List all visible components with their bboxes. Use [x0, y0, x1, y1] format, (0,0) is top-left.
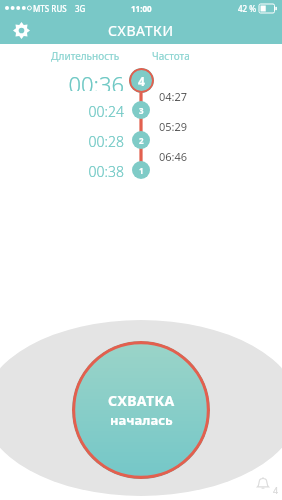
button[interactable]: 00:24	[40, 102, 124, 118]
staticText: СХВАТКИ	[108, 21, 174, 40]
button[interactable]: 00:38	[40, 162, 124, 178]
button[interactable]: СХВАТКА	[72, 341, 210, 479]
button[interactable]: 3	[132, 101, 150, 119]
staticText: 00:24	[88, 102, 124, 118]
staticText: СХВАТКА	[108, 391, 175, 410]
staticText: 05:29	[159, 119, 188, 134]
staticText: 06:46	[159, 149, 188, 164]
button[interactable]: 00:28	[40, 132, 124, 148]
staticText: 4	[138, 73, 145, 89]
button[interactable]: Settings	[8, 17, 34, 43]
staticText: 00:38	[88, 162, 124, 178]
staticText: MTS RUS	[33, 3, 67, 14]
button[interactable]: 4	[129, 68, 154, 93]
staticText: 4	[273, 484, 279, 496]
staticText: 42 %	[238, 3, 257, 14]
staticText: Длительность	[51, 49, 120, 63]
button[interactable]: Notifications	[250, 470, 276, 496]
staticText: 04:27	[159, 89, 188, 104]
staticText: 11:00	[131, 3, 152, 14]
staticText: 2	[139, 135, 144, 146]
button[interactable]: 00:36	[40, 69, 124, 91]
staticText: Частота	[152, 49, 190, 63]
button[interactable]: 2	[132, 131, 150, 149]
staticText: 00:36	[68, 69, 124, 91]
staticText: 3G	[75, 3, 86, 14]
staticText: 3	[139, 105, 144, 116]
staticText: 00:28	[88, 132, 124, 148]
button[interactable]: 1	[132, 161, 150, 179]
staticText: 1	[139, 165, 144, 176]
staticText: началась	[110, 411, 173, 429]
